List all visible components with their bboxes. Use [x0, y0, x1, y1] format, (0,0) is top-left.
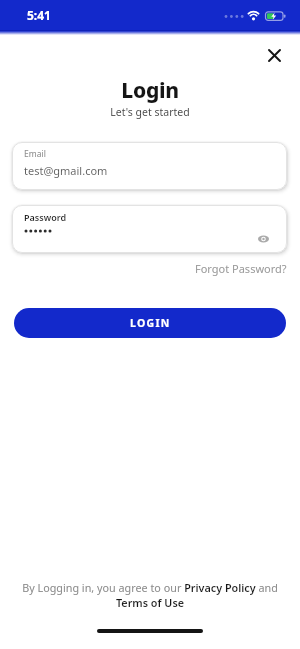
staticText: Password [24, 211, 67, 223]
staticText: Let's get started [0, 105, 300, 119]
button[interactable]: Email [12, 142, 287, 190]
staticText: 5:41 [27, 7, 51, 23]
button[interactable]: By Logging in, you agree to our Privacy … [0, 580, 300, 610]
staticText: Email [24, 148, 46, 160]
staticText: Login [0, 76, 300, 105]
button[interactable]: LOGIN [14, 308, 286, 338]
staticText: test@gmail.com [24, 163, 108, 178]
staticText: LOGIN [130, 316, 171, 330]
button[interactable]: Password [12, 205, 287, 253]
button[interactable]: Forgot Password? [195, 261, 287, 276]
button[interactable] [262, 43, 287, 68]
